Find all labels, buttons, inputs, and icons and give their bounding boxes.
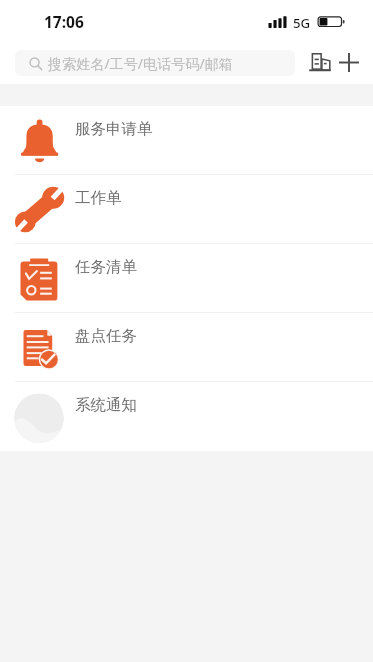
staticText: 搜索姓名/工号/电话号码/邮箱 [48,54,233,73]
staticText: 17:06 [44,11,84,32]
button[interactable]: 盘点任务 [0,313,373,382]
button[interactable]: Add [335,48,363,76]
button[interactable]: 系统通知 [0,382,373,451]
button[interactable]: 任务清单 [0,244,373,313]
button[interactable]: 服务申请单 [0,106,373,175]
button[interactable]: 搜索姓名/工号/电话号码/邮箱 [15,50,295,76]
staticText: 任务清单 [75,257,137,277]
staticText: 盘点任务 [75,326,137,346]
button[interactable]: 工作单 [0,175,373,244]
button[interactable]: Organization [303,44,337,78]
staticText: 工作单 [75,188,122,208]
staticText: 5G [293,14,311,32]
staticText: 服务申请单 [75,119,153,139]
staticText: 系统通知 [75,395,137,415]
